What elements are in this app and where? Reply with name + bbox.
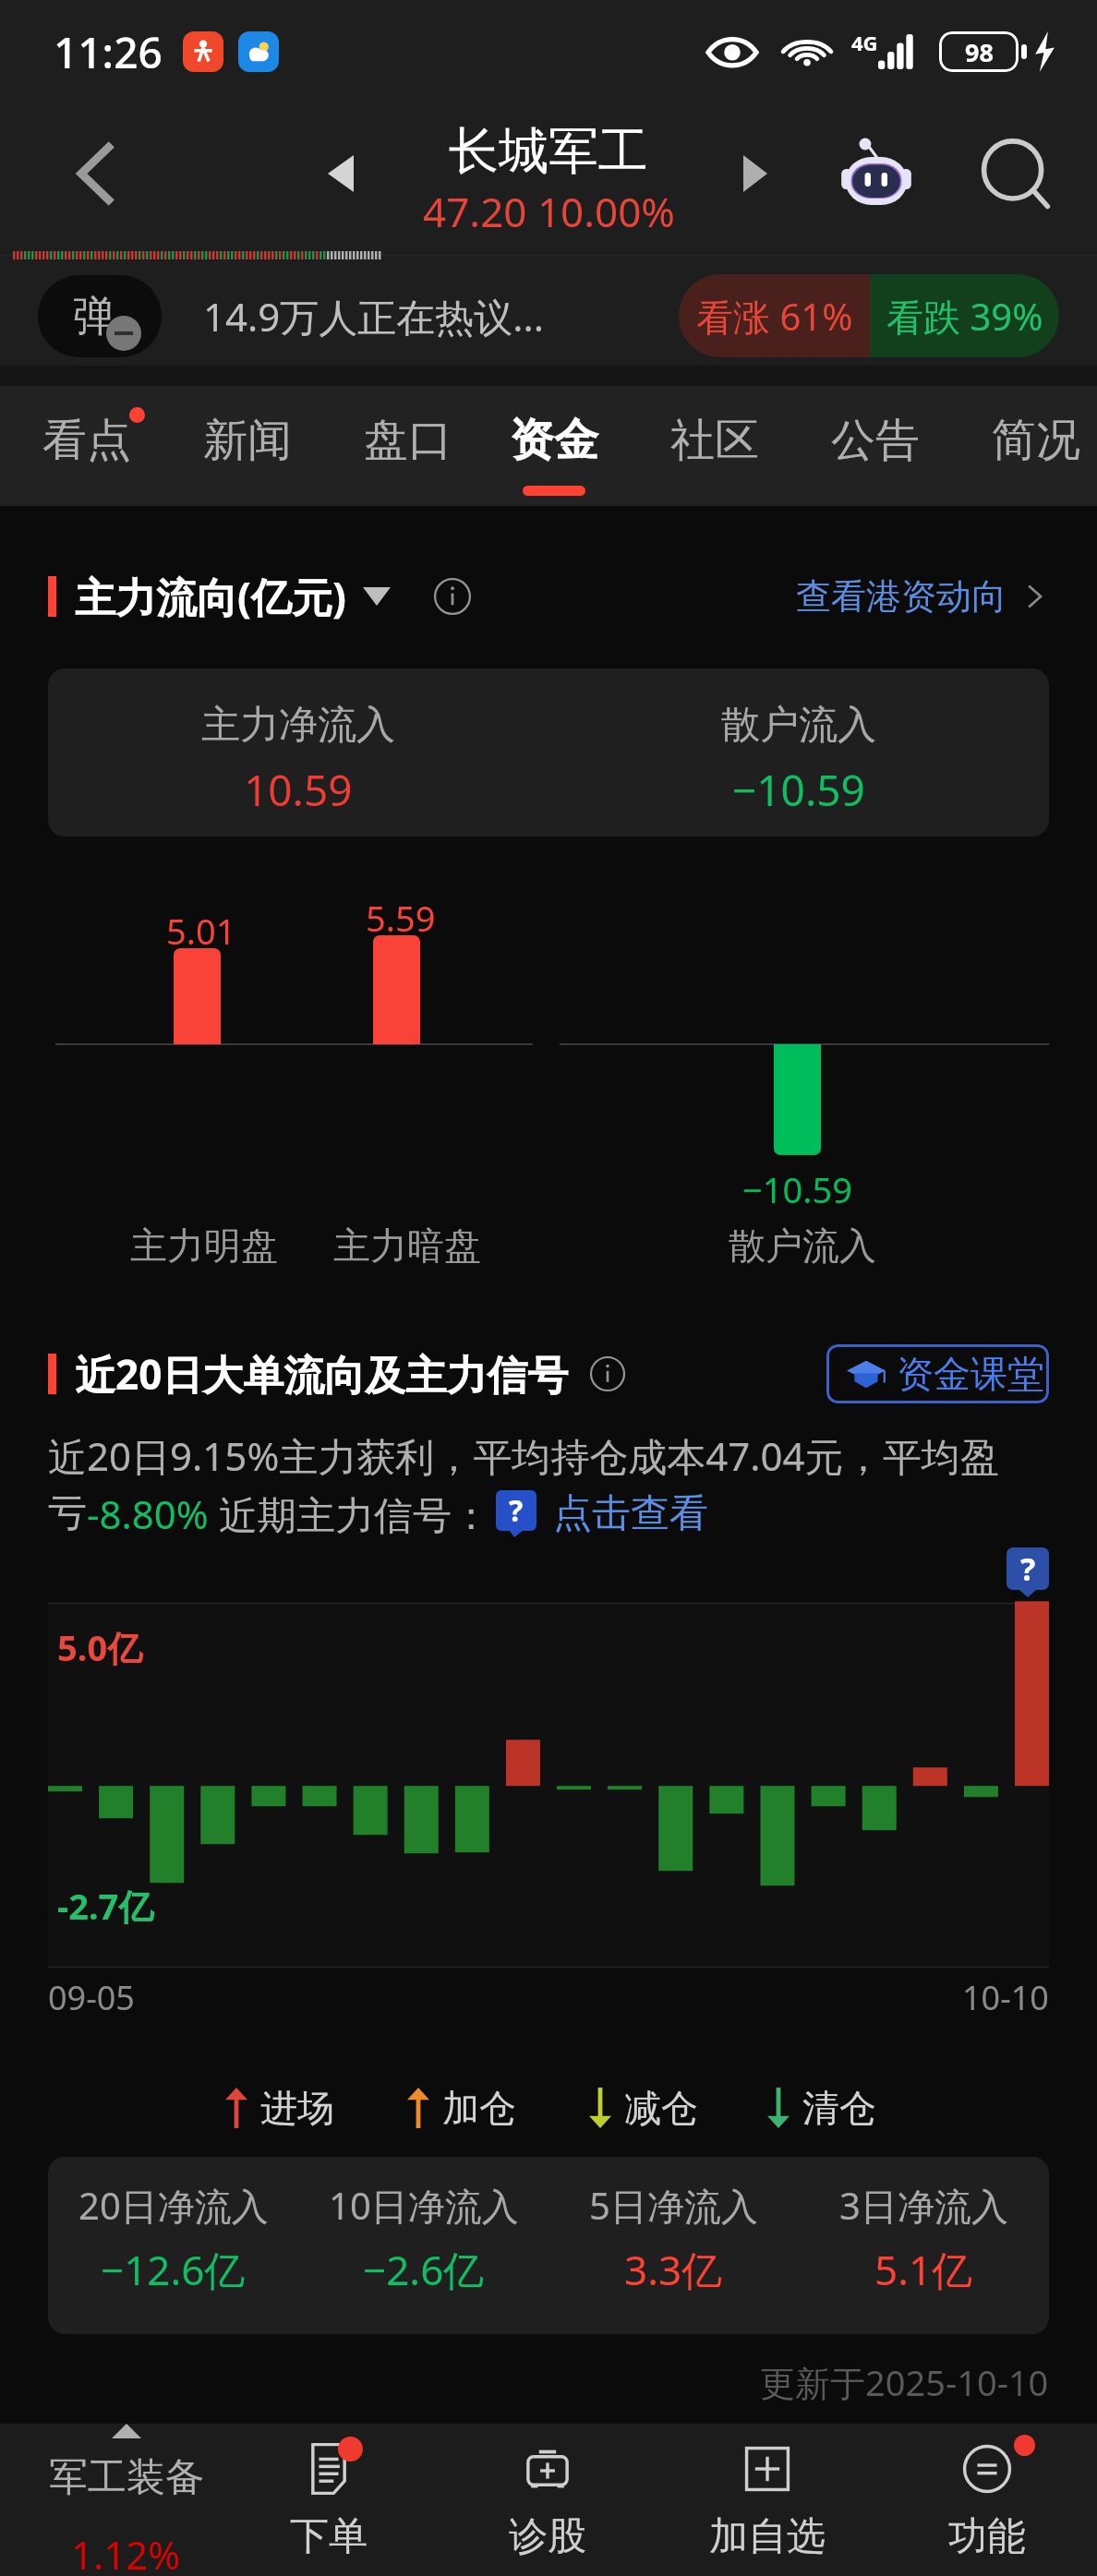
button[interactable]: 减仓 [589,2085,698,2131]
button[interactable]: Info [589,1355,626,1392]
staticText: 盘口 [364,413,452,468]
staticText: 主力暗盘 [333,1222,481,1269]
button[interactable]: Previous stock [188,103,495,244]
staticText: 09-05 [48,1975,135,2020]
button[interactable]: 公告 [831,386,920,506]
staticText: -2.7亿 [57,1882,154,1930]
staticText: 3.3亿 [624,2242,723,2297]
button[interactable]: 点击查看 [553,1489,708,1538]
button[interactable]: Signal help [1007,1547,1049,1590]
button[interactable]: Signal help [496,1490,536,1531]
staticText: 主力净流入 [201,701,395,750]
button[interactable]: 简况 [992,386,1080,506]
staticText: 查看港资动向 [796,574,1007,619]
button[interactable]: 诊股 [438,2424,657,2576]
staticText: 3日净流入 [839,2180,1008,2231]
staticText: 弹 [73,290,115,343]
button[interactable]: 加仓 [407,2085,516,2131]
staticText: 98 [965,35,994,69]
staticText: 诊股 [509,2512,586,2561]
staticText: 简况 [992,413,1080,468]
staticText: 功能 [948,2512,1026,2561]
staticText: 20日净流入 [78,2180,269,2231]
button[interactable]: 资金课堂 [826,1344,1049,1403]
staticText: 加仓 [442,2085,516,2131]
staticText: 散户流入 [721,701,876,750]
staticText: 5.59 [366,894,436,942]
staticText: 10.59 [244,761,353,819]
staticText: 看涨 61% [696,291,853,342]
staticText: 主力明盘 [130,1222,278,1269]
staticText: 近20日9.15%主力获利，平均持仓成本47.04元，平均盈 [48,1429,999,1482]
staticText: 4G [851,29,878,56]
staticText: ? [509,1490,524,1531]
staticText: 5日净流入 [589,2180,758,2231]
staticText: 10-10 [962,1975,1049,2020]
button[interactable]: 盘口 [364,386,452,506]
staticText: 11:26 [54,23,163,81]
staticText: 主力流向(亿元) [75,569,346,624]
staticText: 5.1亿 [874,2242,973,2297]
button[interactable]: 加自选 [657,2424,877,2576]
button[interactable]: AI assistant [829,103,968,244]
staticText: 清仓 [802,2085,876,2131]
button[interactable]: 进场 [225,2085,334,2131]
staticText: 长城军工 [449,120,648,183]
staticText: 新闻 [203,413,292,468]
staticText: 更新于2025-10-10 [760,2358,1049,2406]
staticText: 5.01 [166,907,236,955]
staticText: −2.6亿 [363,2242,485,2297]
staticText: -8.80% [87,1487,209,1540]
button[interactable]: 长城军工 [364,120,733,239]
button[interactable]: 军工装备 [0,2424,219,2576]
button[interactable]: 看点 [42,386,131,506]
staticText: 5.0亿 [57,1623,143,1671]
button[interactable]: Info [433,577,472,616]
staticText: 近期主力信号： [209,1487,490,1540]
button[interactable]: Back [0,103,188,244]
staticText: 加自选 [709,2512,826,2561]
staticText: 进场 [260,2085,334,2131]
staticText: ? [1020,1547,1036,1590]
staticText: 14.9万人正在热议... [203,290,545,343]
button[interactable]: 新闻 [203,386,292,506]
button[interactable]: 清仓 [767,2085,876,2131]
staticText: 近20日大单流向及主力信号 [75,1346,569,1402]
staticText: 47.20 10.00% [423,184,675,239]
staticText: 减仓 [624,2085,698,2131]
button[interactable]: 弹 [38,275,162,357]
staticText: 1.12% [71,2528,181,2576]
staticText: 公告 [831,413,920,468]
staticText: 下单 [290,2512,368,2561]
staticText: −12.6亿 [101,2242,246,2297]
staticText: −10.59 [732,761,865,819]
staticText: 散户流入 [729,1222,876,1269]
staticText: −10.59 [742,1165,852,1213]
staticText: 10日净流入 [329,2180,519,2231]
button[interactable]: Search [968,103,1097,244]
button[interactable]: 功能 [877,2424,1097,2576]
button[interactable]: 资金 [510,386,598,506]
button[interactable]: Next stock [726,103,785,244]
staticText: 亏 [48,1489,87,1538]
button[interactable]: 社区 [670,386,759,506]
staticText: 资金 [510,413,598,468]
button[interactable]: 看涨 61% [679,274,1059,357]
button[interactable]: Change period [363,587,391,606]
staticText: 军工装备 [49,2453,204,2502]
button[interactable]: 下单 [219,2424,438,2576]
staticText: 资金课堂 [897,1351,1044,1397]
button[interactable]: 查看港资动向 [796,574,1049,619]
staticText: 看点 [42,413,131,468]
staticText: 看跌 39% [886,291,1043,342]
staticText: 社区 [670,413,759,468]
